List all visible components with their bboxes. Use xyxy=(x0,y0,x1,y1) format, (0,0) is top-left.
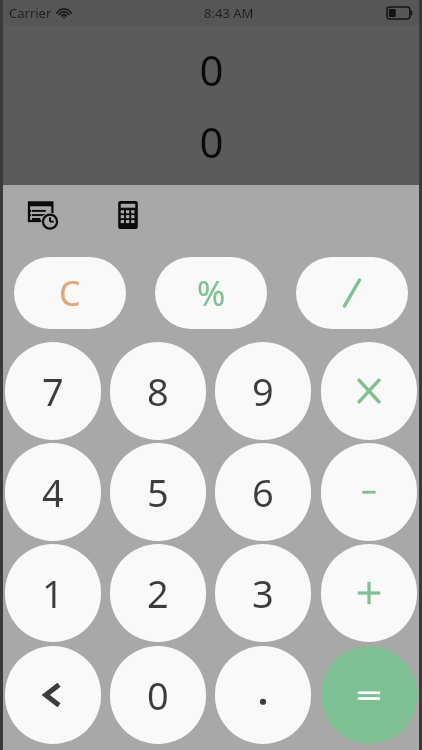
button[interactable]: 4 xyxy=(5,443,101,541)
button[interactable]: 1 xyxy=(5,544,101,642)
button[interactable]: 8 xyxy=(110,342,206,440)
staticText: 5 xyxy=(147,466,169,518)
staticText: 1 xyxy=(42,567,64,619)
button[interactable] xyxy=(296,257,408,329)
staticText: Carrier xyxy=(9,4,52,22)
staticText: 0 xyxy=(147,669,169,721)
staticText: % xyxy=(197,270,226,316)
staticText: 6 xyxy=(252,466,274,518)
button[interactable]: 3 xyxy=(215,544,311,642)
button[interactable]: 0 xyxy=(110,646,206,744)
staticText: 0 xyxy=(199,41,224,98)
staticText: 0 xyxy=(199,113,224,170)
staticText: 2 xyxy=(147,567,169,619)
staticText: 7 xyxy=(42,365,64,417)
staticText: 4 xyxy=(42,466,64,518)
button[interactable]: 7 xyxy=(5,342,101,440)
staticText: 8 xyxy=(147,365,169,417)
button[interactable] xyxy=(321,443,417,541)
button[interactable]: C xyxy=(14,257,126,329)
staticText: C xyxy=(59,270,81,316)
button[interactable]: 2 xyxy=(110,544,206,642)
button[interactable]: Calculator xyxy=(110,197,146,233)
button[interactable]: History xyxy=(26,197,62,233)
staticText: 3 xyxy=(252,567,274,619)
button[interactable] xyxy=(5,646,101,744)
button[interactable] xyxy=(321,342,417,440)
button[interactable] xyxy=(321,646,417,744)
button[interactable]: 6 xyxy=(215,443,311,541)
button[interactable]: 5 xyxy=(110,443,206,541)
staticText: 8:43 AM xyxy=(204,4,254,22)
button[interactable]: 9 xyxy=(215,342,311,440)
button[interactable] xyxy=(215,646,311,744)
staticText: 9 xyxy=(252,365,274,417)
button[interactable]: % xyxy=(155,257,267,329)
button[interactable] xyxy=(321,544,417,642)
